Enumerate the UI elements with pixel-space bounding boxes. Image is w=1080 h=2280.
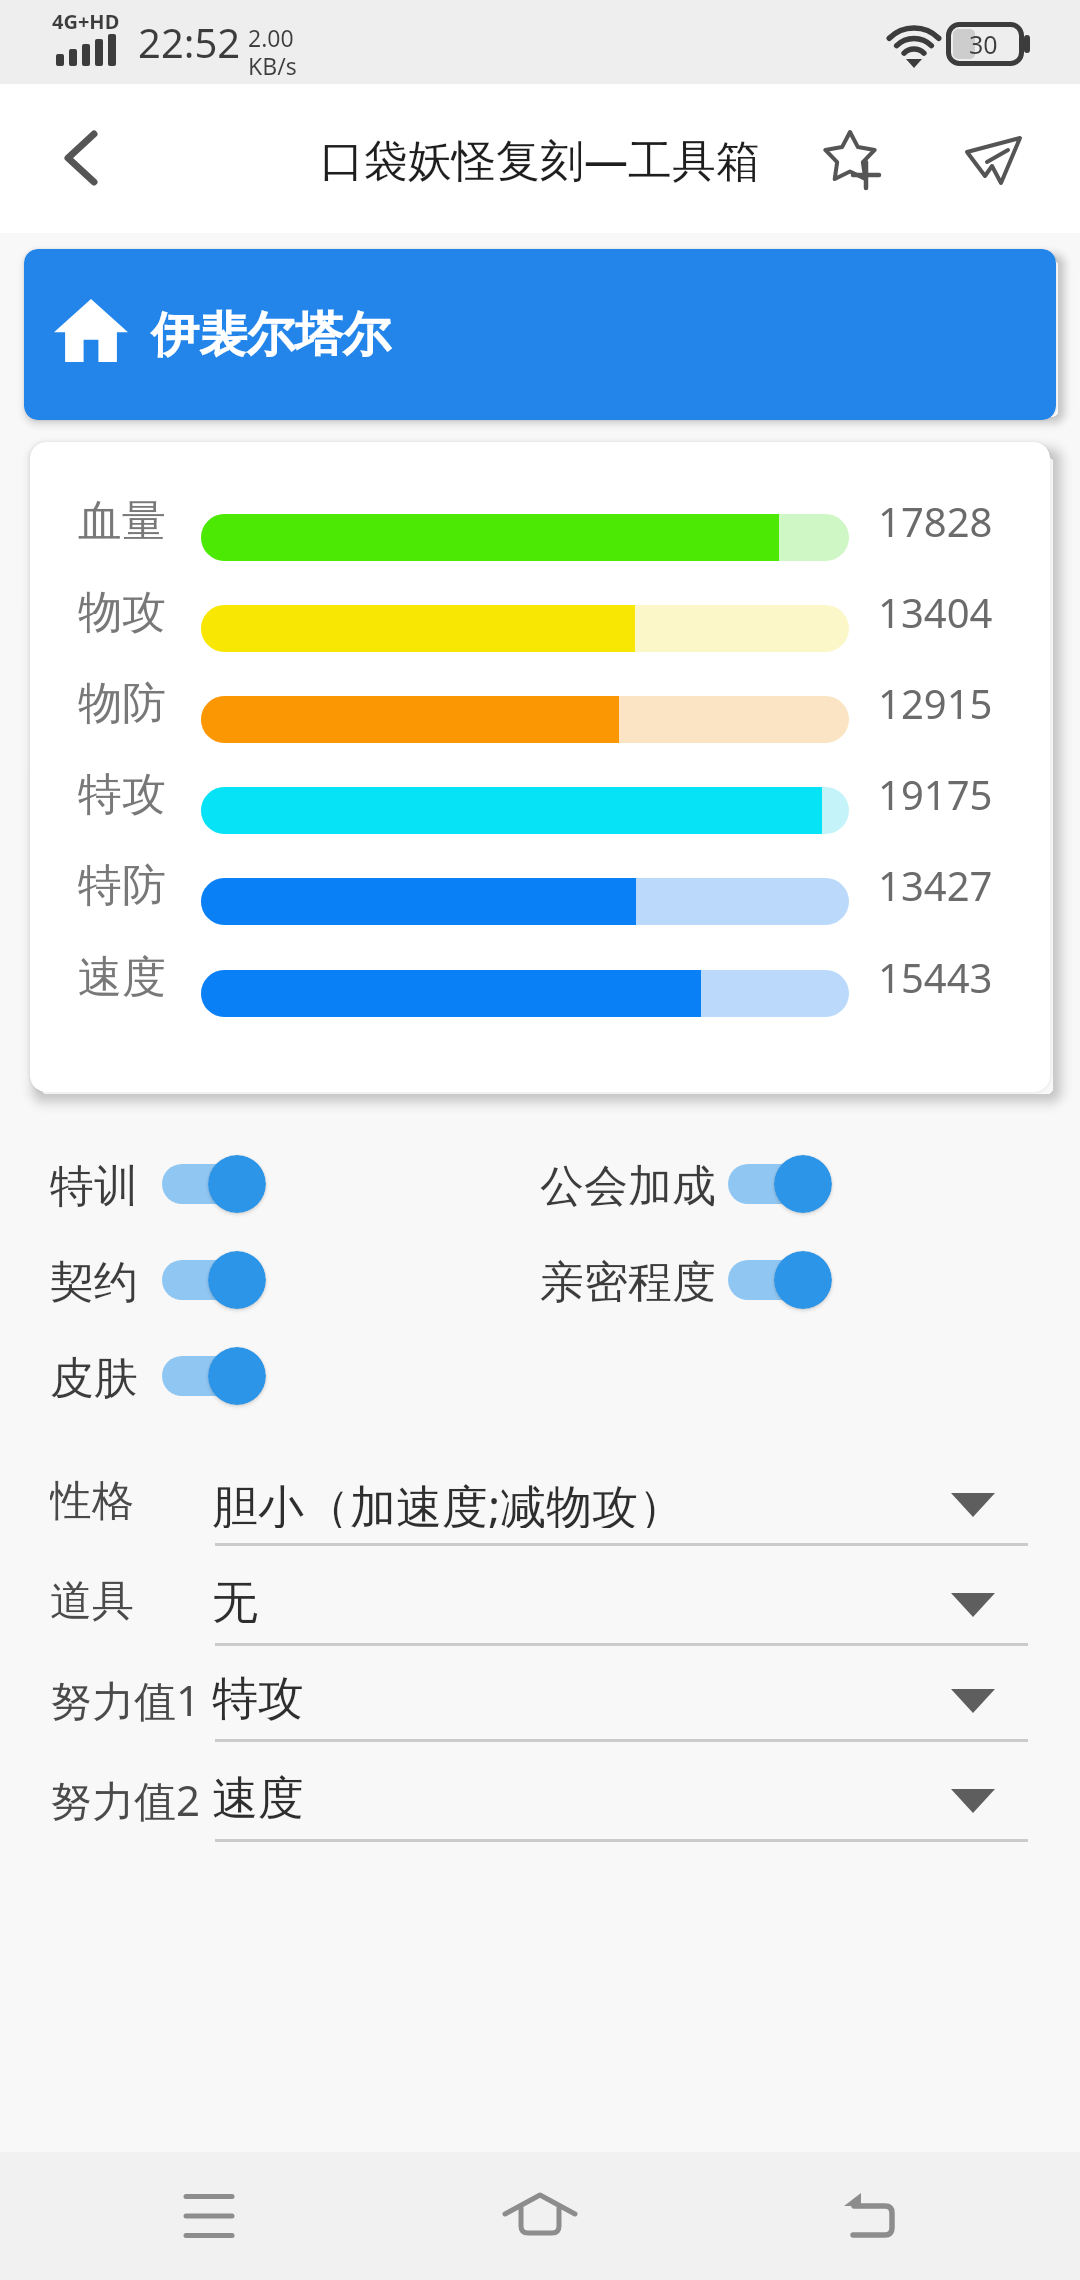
staticText: 物攻 <box>78 585 166 637</box>
staticText: 物防 <box>78 676 166 728</box>
button[interactable] <box>728 1251 832 1309</box>
staticText: 19175 <box>878 767 993 819</box>
button[interactable] <box>30 1453 1050 1549</box>
staticText: 血量 <box>78 494 166 546</box>
staticText: 速度 <box>78 950 166 1002</box>
button[interactable] <box>728 1155 832 1213</box>
button[interactable] <box>30 1649 1050 1745</box>
staticText: 皮肤 <box>50 1351 138 1403</box>
button[interactable] <box>24 249 1056 420</box>
button[interactable] <box>36 110 126 206</box>
button[interactable] <box>162 1155 266 1213</box>
staticText: 22:52 <box>138 15 241 69</box>
staticText: 特训 <box>50 1159 138 1211</box>
staticText: 无 <box>212 1574 258 1628</box>
staticText: 特防 <box>78 858 166 910</box>
staticText: 亲密程度 <box>540 1255 716 1307</box>
button[interactable] <box>162 1347 266 1405</box>
staticText: KB/s <box>248 50 297 80</box>
staticText: 特攻 <box>78 767 166 819</box>
staticText: 15443 <box>878 950 993 1002</box>
staticText: 13404 <box>878 585 993 637</box>
staticText: 30 <box>969 27 998 61</box>
button[interactable] <box>162 1251 266 1309</box>
staticText: 速度 <box>212 1770 304 1824</box>
button[interactable] <box>460 2152 620 2280</box>
staticText: 2.00 <box>248 22 294 52</box>
staticText: 17828 <box>878 494 993 546</box>
button[interactable] <box>130 2152 290 2280</box>
staticText: 契约 <box>50 1255 138 1307</box>
staticText: 胆小（加速度;减物攻） <box>212 1474 685 1528</box>
staticText: 公会加成 <box>540 1159 716 1211</box>
button[interactable] <box>950 116 1038 204</box>
staticText: 12915 <box>878 676 993 728</box>
button[interactable] <box>806 116 894 204</box>
staticText: 道具 <box>50 1575 134 1627</box>
button[interactable] <box>790 2152 950 2280</box>
staticText: 努力值1 <box>50 1671 201 1723</box>
staticText: 特攻 <box>212 1670 304 1724</box>
staticText: 4G+HD <box>52 8 120 34</box>
staticText: 努力值2 <box>50 1771 201 1823</box>
button[interactable] <box>30 1749 1050 1845</box>
staticText: 性格 <box>50 1475 134 1527</box>
button[interactable] <box>30 1553 1050 1649</box>
staticText: 伊裴尔塔尔 <box>151 305 391 365</box>
staticText: 口袋妖怪复刻—工具箱 <box>320 129 760 189</box>
staticText: 13427 <box>878 858 993 910</box>
